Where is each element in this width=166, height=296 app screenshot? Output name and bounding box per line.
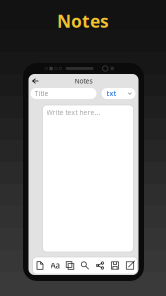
button[interactable]: Back (28, 74, 42, 88)
staticText: Aa (50, 260, 59, 271)
staticText: Notes (57, 9, 109, 32)
staticText: txt (106, 89, 116, 98)
staticText: Write text here... (46, 108, 100, 117)
button[interactable]: Search (77, 257, 92, 274)
staticText: Title (34, 89, 48, 98)
button[interactable]: Document (32, 257, 47, 274)
button[interactable]: txt (101, 88, 135, 99)
button[interactable]: Title (30, 88, 96, 99)
button[interactable]: Share (92, 257, 107, 274)
button[interactable]: Text size (47, 257, 62, 274)
button[interactable]: Duplicate (62, 257, 77, 274)
button[interactable]: Save (107, 257, 122, 274)
staticText: Notes (74, 77, 92, 85)
button[interactable]: Compose (122, 257, 137, 274)
